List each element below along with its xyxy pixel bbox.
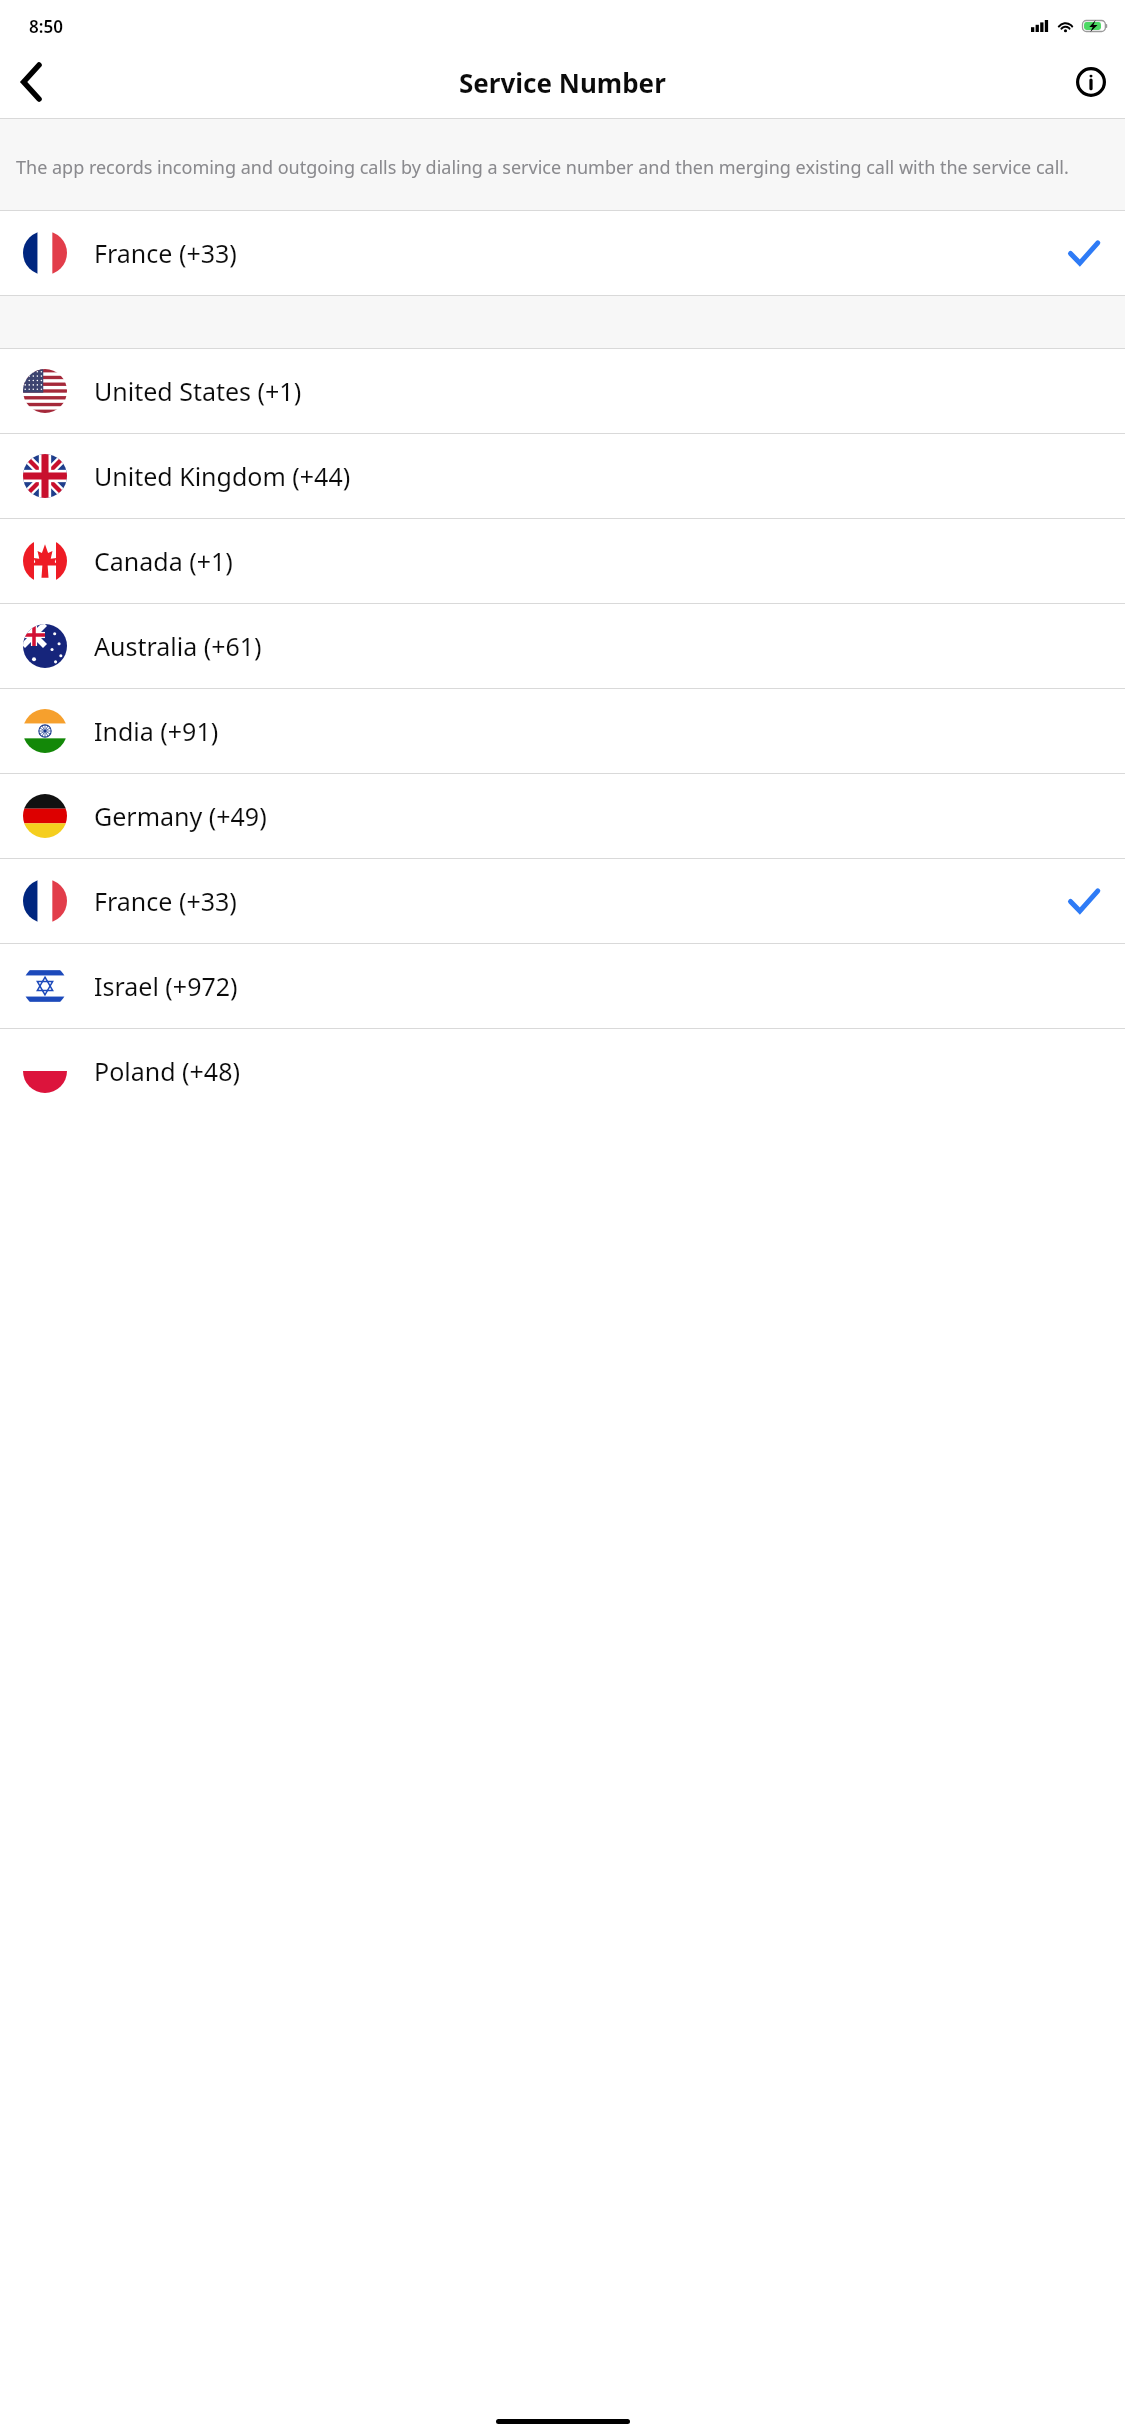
button[interactable]: Information [1057,46,1125,118]
button[interactable]: United States (+1) [0,349,1125,433]
staticText: Canada (+1) [94,544,233,578]
staticText: India (+91) [94,714,219,748]
staticText: Germany (+49) [94,799,267,833]
button[interactable]: Germany (+49) [0,774,1125,858]
button[interactable]: India (+91) [0,689,1125,773]
staticText: United States (+1) [94,374,302,408]
button[interactable]: Back [0,46,64,118]
staticText: Australia (+61) [94,629,262,663]
button[interactable]: United Kingdom (+44) [0,434,1125,518]
staticText: France (+33) [94,884,237,918]
button[interactable]: Canada (+1) [0,519,1125,603]
staticText: France (+33) [94,236,237,270]
button[interactable]: France (+33) [0,859,1125,943]
button[interactable]: France (+33) [0,211,1125,295]
staticText: Poland (+48) [94,1054,240,1088]
staticText: Service Number [459,65,666,100]
staticText: Israel (+972) [94,969,238,1003]
button[interactable]: Australia (+61) [0,604,1125,688]
staticText: 8:50 [29,15,63,38]
staticText: The app records incoming and outgoing ca… [16,155,1069,180]
staticText: United Kingdom (+44) [94,459,351,493]
button[interactable]: Israel (+972) [0,944,1125,1028]
button[interactable]: Poland (+48) [0,1029,1125,1113]
